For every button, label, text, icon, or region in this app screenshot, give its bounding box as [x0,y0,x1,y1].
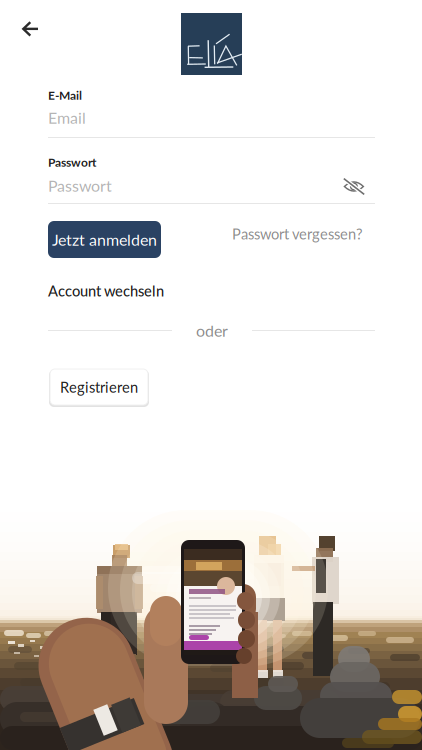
staticText: oder [196,321,228,340]
staticText: Email [48,108,86,127]
staticText: Jetzt anmelden [52,230,157,249]
staticText: Passwort [48,176,112,195]
staticText: Passwort vergessen? [232,225,363,243]
button[interactable]: Zurück [8,8,52,50]
staticText: Passwort [48,155,96,169]
button[interactable]: Registrieren [50,369,148,405]
button[interactable]: Jetzt anmelden [48,221,161,258]
button[interactable]: Account wechseln [48,282,164,300]
button[interactable]: Passwort anzeigen [343,178,365,195]
staticText: E-Mail [48,88,82,102]
button[interactable]: Passwort vergessen? [232,225,363,243]
staticText: Registrieren [60,378,138,396]
staticText: Account wechseln [48,282,164,300]
